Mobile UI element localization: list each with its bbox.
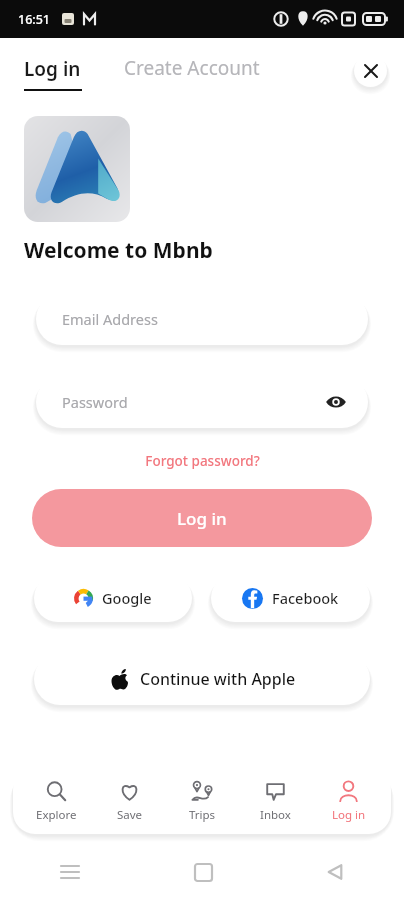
- button[interactable]: Log in: [312, 774, 385, 829]
- button[interactable]: Save: [93, 774, 166, 829]
- staticText: Forgot password?: [145, 452, 260, 470]
- button[interactable]: Inbox: [239, 774, 312, 829]
- staticText: Log in: [177, 507, 227, 530]
- staticText: Facebook: [272, 588, 339, 608]
- button[interactable]: Close: [354, 54, 387, 87]
- button[interactable]: Password: [36, 376, 368, 428]
- staticText: Log in: [332, 807, 366, 823]
- button[interactable]: Trips: [166, 774, 239, 829]
- staticText: Trips: [189, 807, 216, 823]
- staticText: Save: [117, 807, 143, 823]
- button[interactable]: Log in: [24, 56, 82, 91]
- staticText: Log in: [24, 56, 81, 82]
- button[interactable]: Email Address: [36, 293, 368, 345]
- staticText: Create Account: [124, 55, 260, 81]
- staticText: Google: [102, 588, 152, 608]
- staticText: Welcome to Mbnb: [24, 236, 213, 265]
- button[interactable]: Log in: [32, 489, 372, 547]
- button[interactable]: Forgot password?: [139, 446, 266, 476]
- staticText: Explore: [36, 807, 77, 823]
- staticText: Inbox: [260, 807, 291, 823]
- staticText: Email Address: [62, 309, 158, 329]
- button[interactable]: Facebook: [211, 574, 370, 622]
- staticText: Continue with Apple: [140, 668, 296, 690]
- button[interactable]: Explore: [19, 774, 93, 829]
- staticText: 16:51: [18, 11, 51, 28]
- button[interactable]: Continue with Apple: [34, 653, 370, 705]
- staticText: Password: [62, 392, 128, 412]
- button[interactable]: Show password: [322, 388, 350, 416]
- button[interactable]: Google: [34, 574, 192, 622]
- button[interactable]: Create Account: [124, 55, 260, 91]
